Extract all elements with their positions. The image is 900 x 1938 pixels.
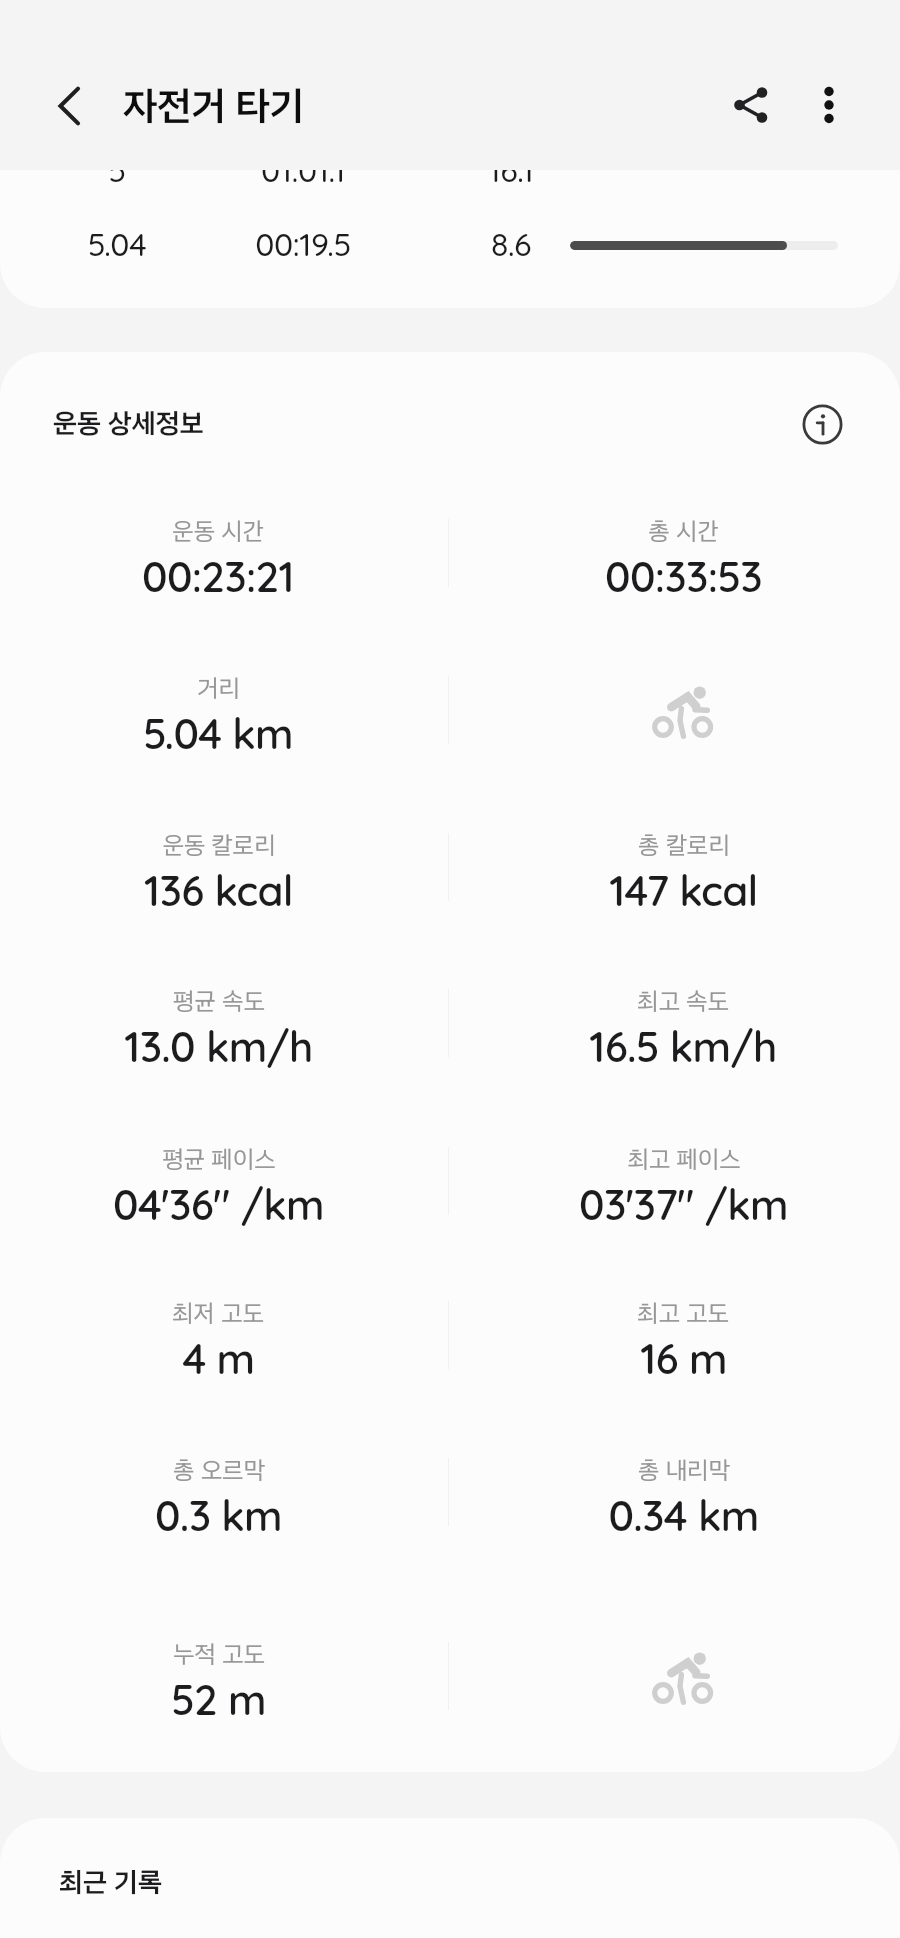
staticText: 00:23:21 (142, 550, 294, 603)
staticText: 평균 페이스 (162, 1144, 276, 1174)
staticText: 4 m (182, 1332, 255, 1385)
staticText: 최고 속도 (637, 986, 729, 1016)
staticText: 5.04 km (143, 707, 293, 760)
staticText: 운동 시간 (172, 516, 264, 546)
staticText: 00:33:53 (605, 550, 762, 603)
staticText: 최근 기록 (59, 1865, 162, 1898)
button[interactable]: More options (798, 74, 860, 136)
staticText: 최저 고도 (172, 1298, 264, 1328)
staticText: 거리 (197, 673, 240, 703)
staticText: 03'37" /km (579, 1178, 788, 1231)
staticText: 16.5 km/h (589, 1020, 777, 1073)
staticText: 5 (17, 150, 217, 190)
staticText: 총 칼로리 (638, 830, 730, 860)
staticText: 00:19.5 (208, 224, 398, 264)
button[interactable]: Information (795, 397, 849, 451)
staticText: 16 m (640, 1332, 727, 1385)
staticText: 136 kcal (144, 864, 293, 917)
staticText: 16.1 (451, 150, 571, 190)
staticText: 최고 고도 (637, 1298, 729, 1328)
staticText: 총 시간 (648, 516, 719, 546)
staticText: 평균 속도 (173, 986, 265, 1016)
staticText: 총 오르막 (173, 1455, 265, 1485)
button[interactable]: Share (721, 74, 783, 136)
staticText: 0.34 km (608, 1489, 759, 1542)
staticText: 최고 페이스 (627, 1144, 741, 1174)
staticText: 13.0 km/h (124, 1020, 313, 1073)
staticText: 누적 고도 (173, 1639, 265, 1669)
staticText: 5.04 (17, 224, 217, 264)
staticText: 자전거 타기 (123, 82, 305, 130)
staticText: 총 내리막 (638, 1455, 730, 1485)
staticText: 147 kcal (609, 864, 758, 917)
staticText: 8.6 (451, 224, 571, 264)
staticText: 04'36" /km (113, 1178, 324, 1231)
staticText: 운동 상세정보 (53, 406, 204, 439)
button[interactable]: Back (40, 75, 102, 137)
staticText: 52 m (171, 1673, 266, 1726)
staticText: 운동 칼로리 (162, 830, 276, 860)
staticText: 0.3 km (155, 1489, 282, 1542)
staticText: 01:01.1 (208, 150, 398, 190)
